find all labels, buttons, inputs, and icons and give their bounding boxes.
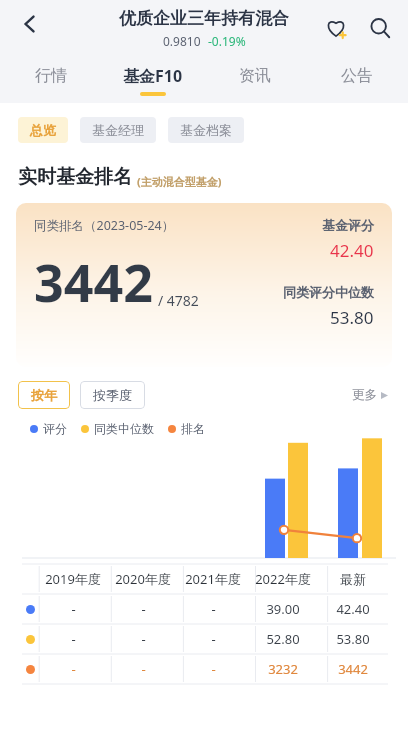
staticText: - xyxy=(71,660,76,678)
staticText: 52.80 xyxy=(266,630,300,648)
button[interactable]: 基金档案 xyxy=(168,117,244,143)
staticText: 2019年度 xyxy=(45,570,101,588)
staticText: - xyxy=(71,600,76,618)
staticText: 实时基金排名 xyxy=(18,165,132,189)
staticText: 更多 xyxy=(352,387,377,403)
staticText: 同类中位数 xyxy=(94,421,154,436)
button[interactable]: Add to favorites xyxy=(314,6,358,50)
button[interactable]: 按季度 xyxy=(80,381,145,409)
staticText: / 4782 xyxy=(158,291,199,310)
button[interactable]: 总览 xyxy=(18,117,68,143)
staticText: 3232 xyxy=(268,660,298,678)
staticText: 总览 xyxy=(30,122,56,138)
staticText: 53.80 xyxy=(336,630,370,648)
button[interactable]: 资讯 xyxy=(204,57,306,103)
staticText: 39.00 xyxy=(266,600,300,618)
staticText: 基金评分 xyxy=(322,217,374,233)
staticText: 优质企业三年持有混合 xyxy=(119,8,289,29)
button[interactable]: 基金F10 xyxy=(102,57,204,103)
staticText: 最新 xyxy=(340,571,366,587)
button[interactable]: Search xyxy=(358,6,402,50)
button[interactable]: 行情 xyxy=(0,57,102,103)
staticText: 0.9810 xyxy=(163,33,201,49)
staticText: 同类排名（2023-05-24） xyxy=(34,217,175,234)
staticText: 2022年度 xyxy=(255,570,311,588)
staticText: 基金F10 xyxy=(123,65,183,87)
staticText: 排名 xyxy=(181,421,205,436)
staticText: 行情 xyxy=(35,66,67,86)
button[interactable]: 更多 xyxy=(348,383,392,407)
button[interactable]: 按年 xyxy=(18,381,70,409)
button[interactable]: Back xyxy=(6,0,54,48)
staticText: - xyxy=(211,600,216,618)
button[interactable]: 同类排名（2023-05-24） xyxy=(16,203,392,367)
staticText: - xyxy=(211,660,216,678)
staticText: 基金档案 xyxy=(180,122,232,138)
staticText: - xyxy=(211,630,216,648)
staticText: 3442 xyxy=(34,246,153,317)
staticText: 2021年度 xyxy=(185,570,241,588)
button[interactable]: 基金经理 xyxy=(80,117,156,143)
staticText: 42.40 xyxy=(336,600,370,618)
staticText: 53.80 xyxy=(330,306,374,329)
button[interactable]: 公告 xyxy=(306,57,408,103)
staticText: 同类评分中位数 xyxy=(283,284,374,300)
staticText: 评分 xyxy=(43,421,67,436)
staticText: 资讯 xyxy=(239,66,271,86)
staticText: (主动混合型基金) xyxy=(137,174,222,189)
staticText: - xyxy=(141,660,146,678)
staticText: 3442 xyxy=(338,660,368,678)
staticText: 2020年度 xyxy=(115,570,171,588)
staticText: 基金经理 xyxy=(92,122,144,138)
staticText: 42.40 xyxy=(330,239,374,262)
staticText: - xyxy=(141,630,146,648)
staticText: - xyxy=(141,600,146,618)
staticText: 按年 xyxy=(31,387,57,403)
staticText: 按季度 xyxy=(93,387,132,403)
staticText: - xyxy=(71,630,76,648)
staticText: 公告 xyxy=(341,66,373,86)
staticText: -0.19% xyxy=(208,33,246,49)
